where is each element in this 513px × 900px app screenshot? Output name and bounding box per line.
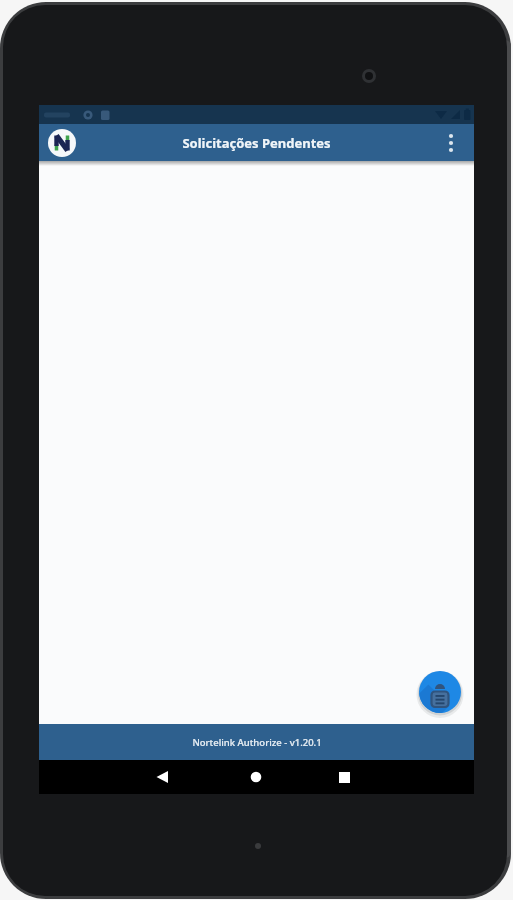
button[interactable] (236, 760, 276, 794)
button[interactable] (324, 760, 364, 794)
button[interactable] (442, 131, 460, 155)
staticText: Nortelink Authorize - v1.20.1 (192, 736, 322, 749)
button[interactable] (142, 760, 182, 794)
button[interactable] (419, 671, 461, 713)
button[interactable] (48, 129, 76, 157)
staticText: Solicitações Pendentes (182, 134, 331, 152)
button[interactable]: Nortelink Authorize - v1.20.1 (39, 724, 474, 760)
